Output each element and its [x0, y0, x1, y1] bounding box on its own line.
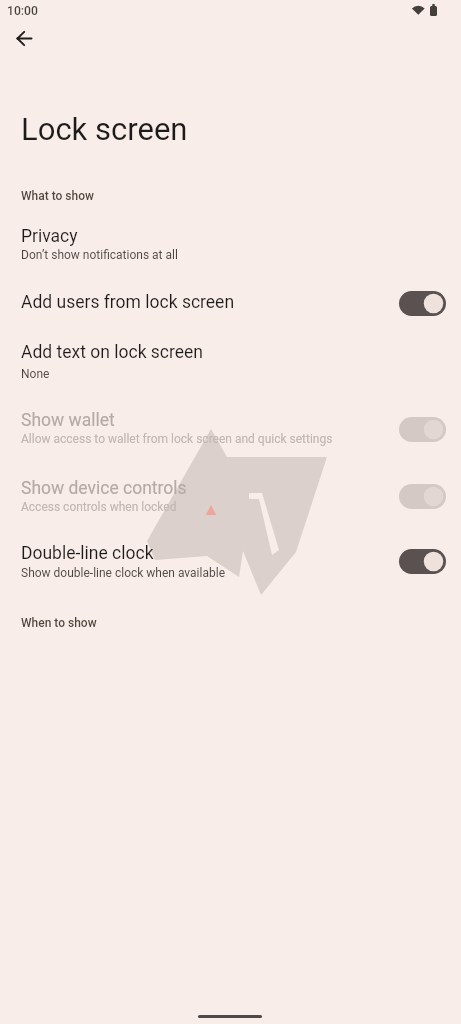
staticText: Privacy: [21, 226, 78, 247]
staticText: Add text on lock screen: [21, 342, 204, 363]
staticText: What to show: [21, 189, 94, 203]
staticText: Double-line clock: [21, 543, 154, 564]
button[interactable]: [0, 463, 461, 525]
staticText: None: [21, 367, 50, 381]
button[interactable]: [0, 279, 461, 329]
staticText: Show device controls: [21, 478, 187, 499]
staticText: Show wallet: [21, 410, 115, 431]
button[interactable]: [8, 23, 40, 55]
button[interactable]: [0, 396, 461, 458]
button[interactable]: [0, 332, 461, 394]
staticText: Add users from lock screen: [21, 292, 235, 313]
staticText: Access controls when locked: [21, 500, 177, 514]
button[interactable]: [0, 531, 461, 593]
staticText: Allow access to wallet from lock screen …: [21, 432, 333, 446]
staticText: When to show: [21, 616, 97, 630]
button[interactable]: [0, 213, 461, 275]
staticText: Lock screen: [21, 111, 188, 147]
staticText: Don’t show notifications at all: [21, 248, 178, 262]
staticText: 10:00: [7, 4, 38, 18]
staticText: Show double-line clock when available: [21, 566, 225, 580]
